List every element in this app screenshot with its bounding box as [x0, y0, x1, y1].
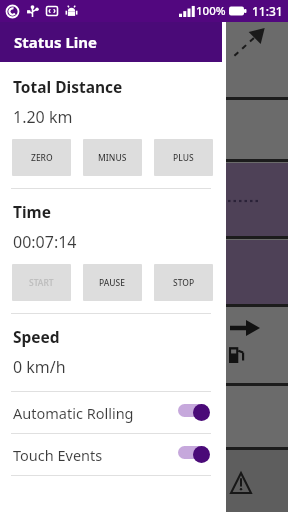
- button[interactable]: MINUS: [83, 139, 142, 176]
- staticText: Touch Events: [13, 445, 103, 465]
- button: START: [12, 264, 71, 301]
- button[interactable]: STOP: [154, 264, 213, 301]
- button[interactable]: Touch Events: [0, 434, 222, 475]
- button[interactable]: Automatic Rolling: [0, 392, 222, 433]
- staticText: PAUSE: [99, 277, 126, 289]
- staticText: ZERO: [31, 152, 53, 164]
- button[interactable]: PAUSE: [83, 264, 142, 301]
- staticText: PLUS: [173, 152, 194, 164]
- staticText: 11:31: [252, 3, 283, 19]
- staticText: 100%: [196, 3, 226, 19]
- staticText: Total Distance: [13, 76, 123, 97]
- button[interactable]: PLUS: [154, 139, 213, 176]
- staticText: 1.20 km: [13, 106, 73, 128]
- staticText: Time: [13, 201, 51, 222]
- staticText: Automatic Rolling: [13, 403, 134, 423]
- staticText: Status Line: [14, 32, 98, 52]
- button[interactable]: ZERO: [12, 139, 71, 176]
- staticText: 0 km/h: [13, 356, 66, 378]
- button[interactable]: Status Line: [0, 22, 222, 62]
- staticText: STOP: [173, 277, 195, 289]
- staticText: MINUS: [98, 152, 127, 164]
- staticText: 00:07:14: [13, 231, 77, 253]
- staticText: Speed: [13, 326, 60, 347]
- staticText: START: [29, 277, 54, 289]
